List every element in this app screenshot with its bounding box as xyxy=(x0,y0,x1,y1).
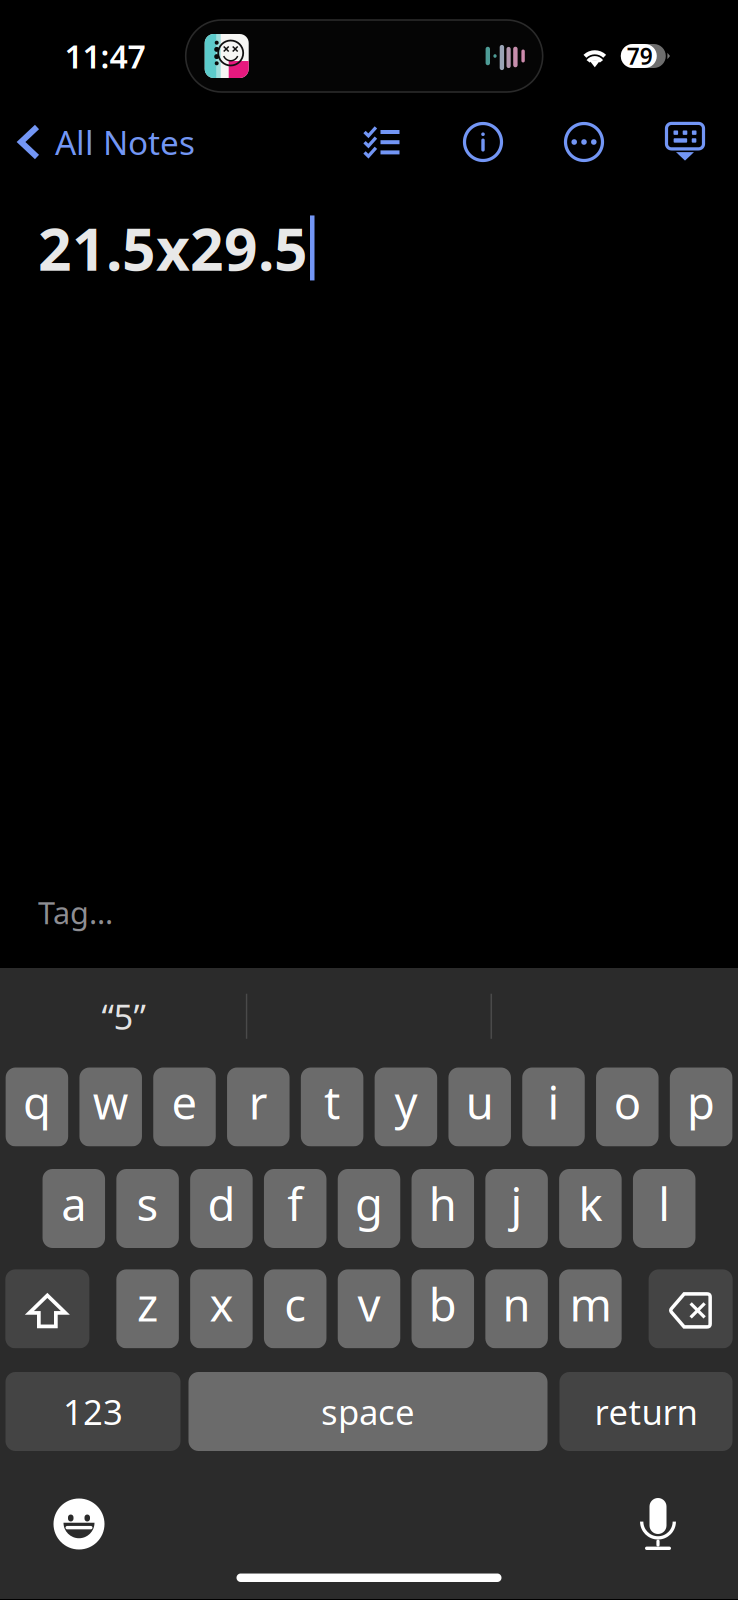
button[interactable]: n xyxy=(485,1269,548,1348)
button[interactable]: t xyxy=(301,1067,363,1146)
button[interactable]: b xyxy=(412,1269,474,1348)
staticText: r xyxy=(249,1072,268,1132)
button[interactable]: Delete xyxy=(649,1269,733,1348)
staticText: k xyxy=(578,1173,602,1234)
staticText: h xyxy=(429,1173,457,1234)
staticText: w xyxy=(93,1072,129,1132)
staticText: 21.5x29.5 xyxy=(38,209,308,287)
staticText: u xyxy=(466,1072,494,1132)
button[interactable]: “5” xyxy=(1,981,246,1051)
staticText: 123 xyxy=(63,1388,123,1434)
staticText: b xyxy=(429,1274,457,1334)
button[interactable]: 21.5x29.5 xyxy=(0,181,738,888)
button[interactable]: l xyxy=(633,1169,695,1248)
staticText: v xyxy=(357,1274,380,1334)
staticText: space xyxy=(321,1388,415,1434)
button[interactable]: c xyxy=(264,1269,326,1348)
button[interactable]: Note Details xyxy=(448,109,518,175)
button[interactable]: q xyxy=(6,1067,68,1146)
staticText: g xyxy=(355,1173,383,1234)
button[interactable]: Hide Keyboard xyxy=(650,109,720,175)
staticText: t xyxy=(324,1072,340,1132)
staticText: i xyxy=(547,1072,559,1132)
button[interactable]: Checklist xyxy=(347,109,417,175)
staticText: a xyxy=(61,1173,86,1234)
staticText: Tag... xyxy=(38,892,113,933)
button[interactable]: All Notes xyxy=(0,109,205,175)
staticText: p xyxy=(687,1072,715,1132)
staticText: All Notes xyxy=(55,120,195,164)
staticText: return xyxy=(594,1388,697,1434)
button[interactable]: j xyxy=(485,1169,548,1248)
staticText: d xyxy=(207,1173,235,1234)
staticText: l xyxy=(658,1173,670,1234)
button[interactable]: Shift xyxy=(5,1269,89,1348)
button[interactable]: k xyxy=(559,1169,622,1248)
button[interactable]: p xyxy=(670,1067,732,1146)
button[interactable]: f xyxy=(264,1169,326,1248)
button[interactable]: v xyxy=(338,1269,400,1348)
staticText: x xyxy=(209,1274,233,1334)
button[interactable]: d xyxy=(190,1169,253,1248)
staticText: f xyxy=(287,1173,303,1234)
staticText: e xyxy=(171,1072,197,1132)
staticText: j xyxy=(511,1173,523,1234)
button[interactable]: Emoji xyxy=(37,1488,121,1560)
button[interactable]: w xyxy=(79,1067,142,1146)
button[interactable]: r xyxy=(227,1067,289,1146)
button[interactable]: 123 xyxy=(5,1372,180,1451)
staticText: “5” xyxy=(101,993,145,1039)
staticText: c xyxy=(284,1274,306,1334)
staticText: s xyxy=(137,1173,159,1234)
staticText: y xyxy=(394,1072,417,1132)
staticText: z xyxy=(137,1274,158,1334)
staticText: 79 xyxy=(627,41,653,71)
button[interactable]: More xyxy=(549,109,619,175)
button[interactable]: z xyxy=(116,1269,179,1348)
button[interactable]: Tag... xyxy=(0,888,738,970)
button[interactable]: u xyxy=(448,1067,511,1146)
button[interactable]: Dictation xyxy=(616,1488,700,1560)
button[interactable]: a xyxy=(43,1169,105,1248)
staticText: q xyxy=(23,1072,51,1132)
button[interactable]: s xyxy=(116,1169,179,1248)
staticText: n xyxy=(503,1274,531,1334)
button[interactable]: i xyxy=(522,1067,585,1146)
button[interactable]: m xyxy=(559,1269,622,1348)
button[interactable]: y xyxy=(375,1067,437,1146)
button[interactable]: e xyxy=(153,1067,216,1146)
button[interactable]: o xyxy=(596,1067,658,1146)
button[interactable]: x xyxy=(190,1269,253,1348)
staticText: 11:47 xyxy=(64,35,145,77)
button[interactable]: g xyxy=(338,1169,400,1248)
staticText: o xyxy=(614,1072,641,1132)
button[interactable]: h xyxy=(412,1169,474,1248)
button[interactable]: space xyxy=(188,1372,547,1451)
staticText: m xyxy=(569,1274,611,1334)
button[interactable]: return xyxy=(559,1372,732,1451)
